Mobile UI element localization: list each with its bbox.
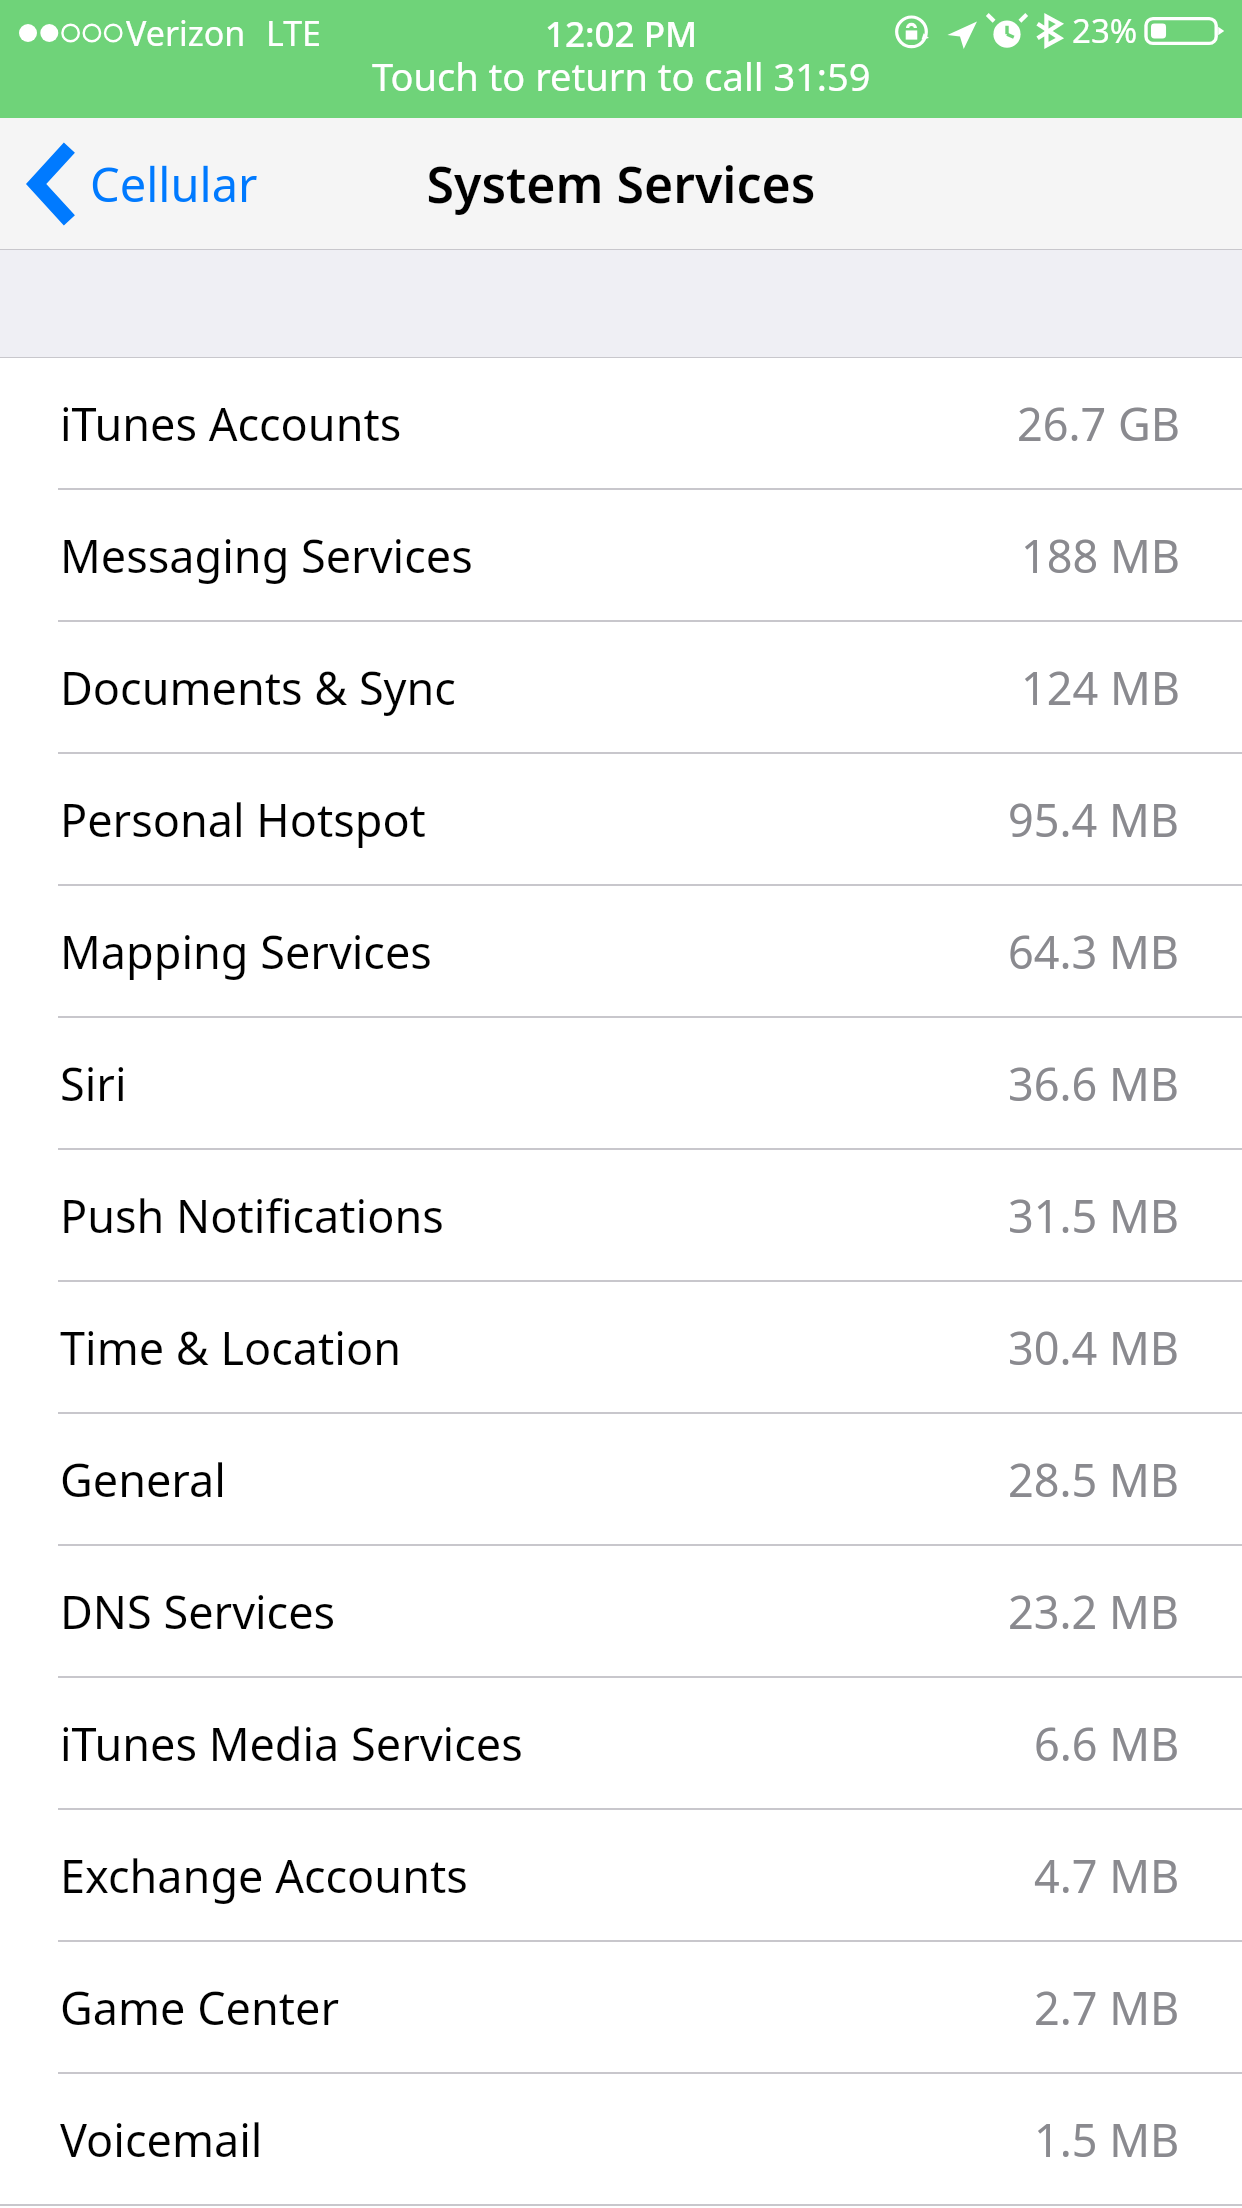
staticText: iTunes Accounts — [60, 393, 402, 454]
staticText: 26.7 GB — [1017, 393, 1180, 454]
staticText: 28.5 MB — [1008, 1449, 1180, 1510]
staticText: DNS Services — [60, 1581, 336, 1642]
button[interactable]: Touch to return to call — [0, 0, 1242, 118]
staticText: 2.7 MB — [1034, 1977, 1180, 2038]
button[interactable]: Time & Location — [0, 1282, 1242, 1414]
button[interactable]: Game Center — [0, 1942, 1242, 2074]
button[interactable]: iTunes Media Services — [0, 1678, 1242, 1810]
staticText: 30.4 MB — [1008, 1317, 1180, 1378]
button[interactable]: General — [0, 1414, 1242, 1546]
staticText: 1.5 MB — [1034, 2109, 1180, 2170]
staticText: Push Notifications — [60, 1185, 444, 1246]
button[interactable]: DNS Services — [0, 1546, 1242, 1678]
staticText: 31.5 MB — [1008, 1185, 1180, 1246]
button[interactable]: Voicemail — [0, 2074, 1242, 2206]
staticText: LTE — [266, 10, 321, 56]
staticText: Documents & Sync — [60, 657, 456, 718]
staticText: iTunes Media Services — [60, 1713, 523, 1774]
button[interactable]: Messaging Services — [0, 490, 1242, 622]
button[interactable]: Documents & Sync — [0, 622, 1242, 754]
button[interactable]: Siri — [0, 1018, 1242, 1150]
staticText: Exchange Accounts — [60, 1845, 468, 1906]
staticText: Time & Location — [60, 1317, 401, 1378]
staticText: Game Center — [60, 1977, 340, 2038]
staticText: 6.6 MB — [1034, 1713, 1180, 1774]
staticText: 95.4 MB — [1008, 789, 1180, 850]
button[interactable]: iTunes Accounts — [0, 358, 1242, 490]
staticText: Personal Hotspot — [60, 789, 426, 850]
button[interactable]: Mapping Services — [0, 886, 1242, 1018]
button[interactable]: Personal Hotspot — [0, 754, 1242, 886]
staticText: Touch to return to call 31:59 — [372, 50, 871, 102]
staticText: Messaging Services — [60, 525, 473, 586]
button[interactable]: Push Notifications — [0, 1150, 1242, 1282]
staticText: Verizon — [126, 10, 246, 56]
staticText: Cellular — [90, 152, 258, 216]
staticText: 188 MB — [1021, 525, 1180, 586]
staticText: 12:02 PM — [545, 10, 698, 58]
staticText: Siri — [60, 1053, 127, 1114]
staticText: General — [60, 1449, 226, 1510]
button[interactable]: Cellular — [0, 118, 282, 250]
staticText: 36.6 MB — [1008, 1053, 1180, 1114]
staticText: 23% — [1072, 8, 1138, 53]
staticText: 23.2 MB — [1008, 1581, 1180, 1642]
staticText: System Services — [426, 150, 816, 218]
staticText: Mapping Services — [60, 921, 432, 982]
staticText: 64.3 MB — [1008, 921, 1180, 982]
button[interactable]: Exchange Accounts — [0, 1810, 1242, 1942]
staticText: 4.7 MB — [1034, 1845, 1180, 1906]
staticText: 124 MB — [1021, 657, 1180, 718]
staticText: Voicemail — [60, 2109, 263, 2170]
